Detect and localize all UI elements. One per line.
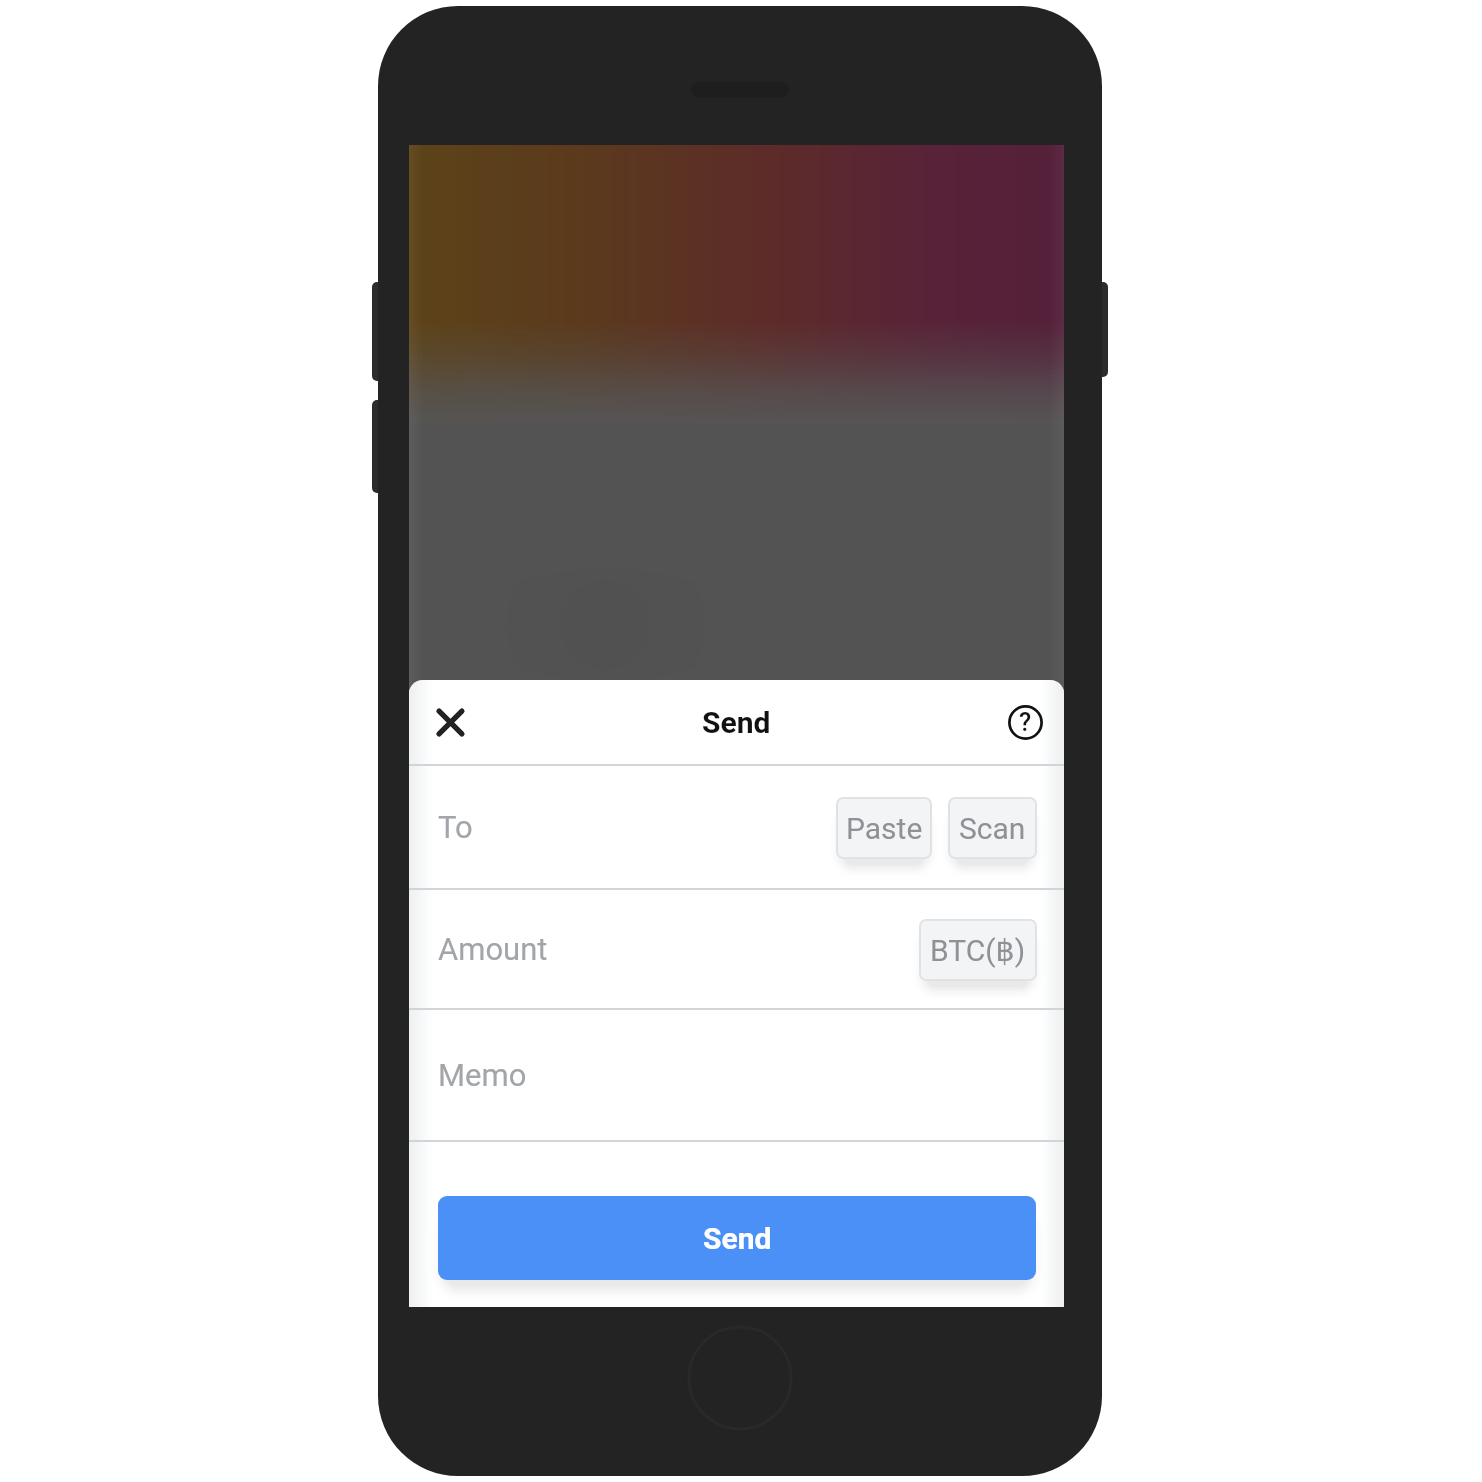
button[interactable]: Memo bbox=[409, 1010, 1064, 1140]
button[interactable]: Scan bbox=[948, 797, 1037, 859]
button[interactable]: Send bbox=[438, 1196, 1036, 1280]
button[interactable]: Paste bbox=[836, 797, 932, 859]
staticText: Scan bbox=[959, 811, 1026, 846]
button[interactable]: To bbox=[409, 766, 1064, 888]
staticText: Send bbox=[703, 1221, 772, 1256]
staticText: To bbox=[438, 809, 473, 845]
button[interactable]: Close bbox=[420, 692, 480, 752]
staticText: Amount bbox=[438, 931, 548, 967]
staticText: Paste bbox=[846, 811, 923, 846]
button[interactable]: BTC(฿) bbox=[919, 919, 1037, 981]
staticText: Send bbox=[702, 705, 771, 740]
button[interactable]: Help bbox=[999, 696, 1051, 748]
staticText: Memo bbox=[438, 1057, 527, 1093]
staticText: BTC(฿) bbox=[930, 933, 1026, 968]
staticText: ? bbox=[1019, 708, 1032, 737]
button[interactable]: Amount bbox=[409, 890, 1064, 1008]
